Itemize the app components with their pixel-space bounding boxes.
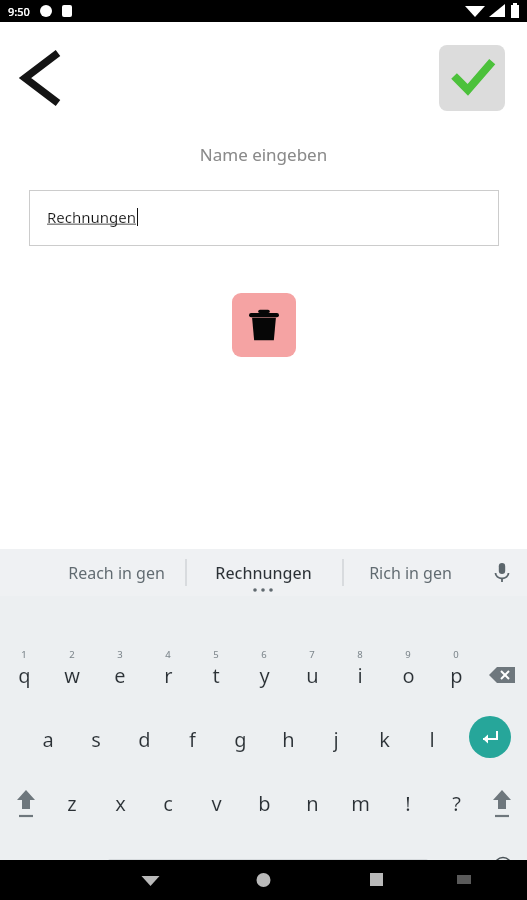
staticText: j — [333, 726, 339, 752]
staticText: f — [189, 726, 196, 752]
staticText: Reach in gen — [68, 562, 165, 584]
staticText: , — [76, 856, 81, 881]
button[interactable] — [336, 646, 384, 698]
staticText: 7 — [309, 648, 315, 661]
staticText: u — [306, 662, 319, 688]
button[interactable] — [72, 714, 120, 768]
staticText: c — [163, 790, 173, 816]
button[interactable] — [56, 842, 100, 890]
staticText: 6 — [261, 648, 267, 661]
staticText: i — [357, 662, 363, 688]
button[interactable]: Enter — [468, 715, 512, 759]
staticText: e — [114, 662, 126, 688]
staticText: 9:50 — [8, 4, 30, 19]
button[interactable]: Reach in gen — [38, 549, 194, 596]
button[interactable] — [192, 646, 240, 698]
button[interactable] — [96, 646, 144, 698]
button[interactable] — [144, 778, 192, 832]
staticText: p — [450, 662, 463, 688]
staticText: g — [234, 726, 247, 752]
button[interactable] — [384, 646, 432, 698]
staticText: 2 — [69, 648, 75, 661]
button[interactable] — [408, 714, 456, 768]
staticText: n — [306, 790, 319, 816]
staticText: Rich in gen — [369, 562, 452, 584]
button[interactable]: Recents — [354, 860, 399, 900]
staticText: l — [429, 726, 435, 752]
staticText: r — [164, 662, 173, 688]
button[interactable]: Emoji — [482, 846, 524, 886]
staticText: 3 — [117, 648, 123, 661]
staticText: w — [64, 662, 80, 688]
staticText: b — [258, 790, 271, 816]
staticText: k — [379, 726, 390, 752]
button[interactable] — [120, 714, 168, 768]
button[interactable]: Space — [108, 859, 428, 879]
staticText: 4 — [165, 648, 171, 661]
staticText: Name eingeben — [0, 143, 527, 166]
button[interactable] — [48, 646, 96, 698]
button[interactable] — [192, 778, 240, 832]
button[interactable]: Shift — [4, 778, 48, 832]
staticText: y — [259, 662, 270, 688]
staticText: ? — [452, 790, 461, 816]
button[interactable] — [2, 842, 50, 890]
staticText: o — [402, 662, 415, 688]
staticText: ! — [405, 790, 411, 816]
staticText: x — [115, 790, 126, 816]
button[interactable] — [360, 714, 408, 768]
button[interactable] — [288, 646, 336, 698]
button[interactable] — [168, 714, 216, 768]
button[interactable]: Backspace — [478, 646, 526, 698]
button[interactable]: Shift — [480, 778, 524, 832]
staticText: 9 — [405, 648, 411, 661]
button[interactable] — [48, 778, 96, 832]
staticText: t — [212, 662, 220, 688]
button[interactable]: Rich in gen — [332, 549, 488, 596]
button[interactable] — [264, 714, 312, 768]
button[interactable]: Delete — [232, 293, 296, 357]
staticText: s — [91, 726, 101, 752]
button[interactable]: Back — [12, 42, 74, 114]
button[interactable] — [438, 842, 480, 890]
staticText: z — [67, 790, 77, 816]
button[interactable] — [96, 778, 144, 832]
button[interactable] — [240, 646, 288, 698]
staticText: 5 — [213, 648, 219, 661]
button[interactable]: Rechnungen — [29, 190, 499, 246]
button[interactable] — [432, 778, 480, 832]
staticText: a — [42, 726, 54, 752]
staticText: Rechnungen — [47, 207, 137, 227]
staticText: v — [211, 790, 222, 816]
staticText: . — [456, 856, 461, 881]
staticText: q — [18, 662, 31, 688]
staticText: Rechnungen — [215, 562, 312, 584]
staticText: 8 — [357, 648, 363, 661]
button[interactable] — [432, 646, 480, 698]
button[interactable] — [216, 714, 264, 768]
button[interactable] — [336, 778, 384, 832]
button[interactable]: Rechnungen — [185, 549, 341, 596]
staticText: ?123 — [10, 859, 41, 878]
button[interactable] — [240, 778, 288, 832]
button[interactable]: Home — [241, 860, 286, 900]
button[interactable] — [384, 778, 432, 832]
button[interactable]: Hide keyboard — [128, 860, 173, 900]
staticText: 0 — [453, 648, 459, 661]
button[interactable] — [24, 714, 72, 768]
button[interactable] — [312, 714, 360, 768]
button[interactable]: Switch keyboard — [443, 860, 485, 900]
staticText: h — [282, 726, 295, 752]
button[interactable] — [144, 646, 192, 698]
staticText: 1 — [21, 648, 27, 661]
button[interactable] — [0, 646, 48, 698]
staticText: m — [351, 790, 370, 816]
button[interactable] — [288, 778, 336, 832]
button[interactable]: Confirm — [439, 45, 505, 111]
staticText: d — [138, 726, 151, 752]
